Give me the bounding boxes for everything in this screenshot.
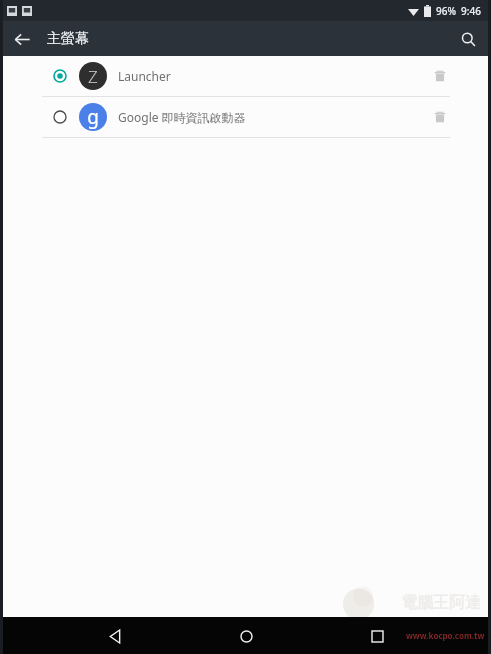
button[interactable]: Back xyxy=(98,619,132,653)
button[interactable]: g xyxy=(0,97,491,137)
staticText: Launcher xyxy=(118,68,171,84)
button[interactable]: Back xyxy=(7,24,37,54)
staticText: 主螢幕 xyxy=(47,30,89,48)
button[interactable]: Delete xyxy=(427,104,453,130)
button[interactable]: Delete xyxy=(427,63,453,89)
button[interactable]: Search xyxy=(453,24,483,54)
button[interactable]: Z xyxy=(0,56,491,96)
staticText: Google 即時資訊啟動器 xyxy=(118,109,246,125)
staticText: 96% xyxy=(436,4,456,18)
staticText: Z xyxy=(88,65,98,88)
staticText: www.kocpo.com.tw xyxy=(406,630,485,641)
staticText: g xyxy=(87,104,99,130)
staticText: 電腦王阿達 xyxy=(401,593,481,613)
button[interactable]: Recent apps xyxy=(360,619,394,653)
button[interactable]: Home xyxy=(229,619,263,653)
staticText: 9:46 xyxy=(461,4,481,18)
